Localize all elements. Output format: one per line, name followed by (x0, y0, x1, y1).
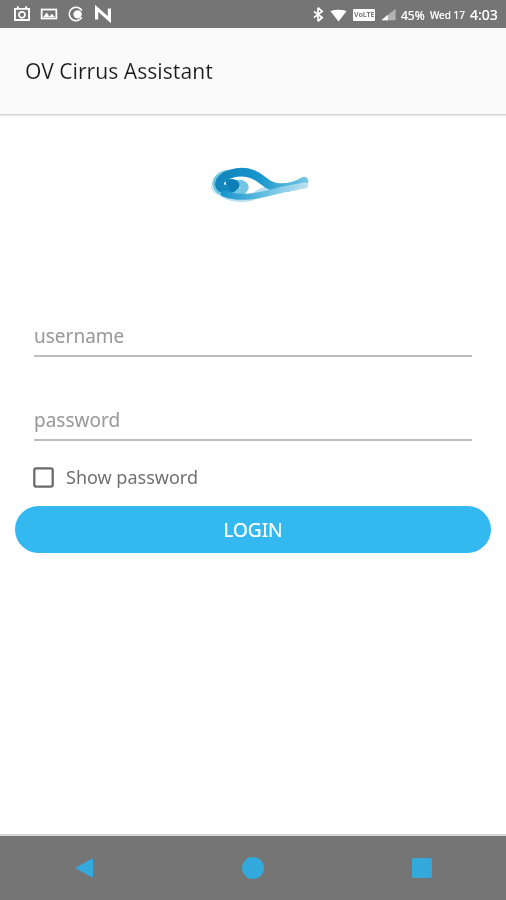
staticText: username (34, 323, 125, 349)
staticText: VoLTE (354, 10, 375, 20)
staticText: 45% (401, 7, 425, 23)
button[interactable]: Show password (30, 461, 200, 494)
button[interactable]: Back (0, 836, 168, 900)
button[interactable]: Home (168, 836, 337, 900)
button[interactable]: password (34, 407, 472, 441)
staticText: Show password (66, 465, 198, 490)
button[interactable]: Recent apps (337, 836, 506, 900)
staticText: LOGIN (223, 517, 283, 543)
staticText: OV Cirrus Assistant (25, 57, 213, 86)
staticText: 4:03 (470, 5, 498, 24)
staticText: password (34, 407, 121, 433)
staticText: Wed 17 (430, 8, 465, 22)
button[interactable]: username (34, 323, 472, 357)
button[interactable]: LOGIN (15, 506, 491, 553)
